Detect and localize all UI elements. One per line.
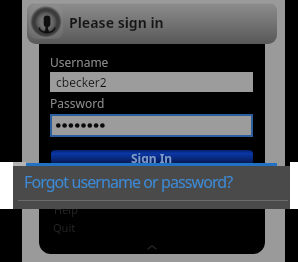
staticText: cbecker2	[56, 74, 107, 90]
button[interactable]: Sign In	[51, 150, 253, 166]
button[interactable]: Please sign in	[27, 2, 277, 44]
staticText: Sign In	[131, 150, 173, 166]
staticText: Please sign in	[69, 13, 164, 32]
button[interactable]: Help	[54, 202, 78, 217]
staticText: Forgot username or password?	[24, 171, 233, 193]
staticText: Password	[50, 95, 105, 111]
staticText: Username	[50, 54, 109, 70]
button[interactable]	[50, 114, 253, 137]
button[interactable]: Forgot username or password?	[13, 166, 290, 209]
button[interactable]: Voice input	[29, 5, 63, 39]
button[interactable]: Quit	[53, 220, 76, 235]
button[interactable]: cbecker2	[50, 72, 253, 92]
